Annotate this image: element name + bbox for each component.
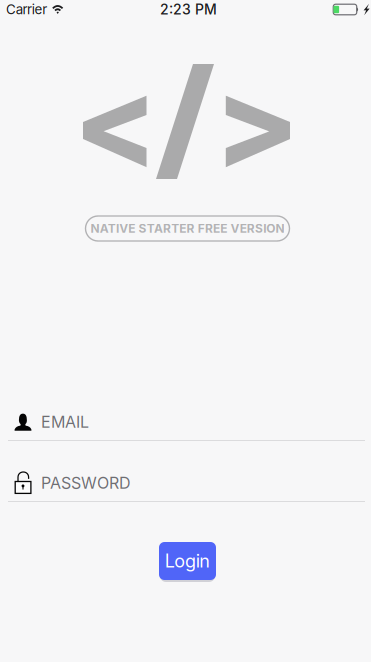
staticText: NATIVE STARTER FREE VERSION <box>90 221 284 236</box>
staticText: EMAIL <box>41 412 89 432</box>
staticText: 2:23 PM <box>160 1 217 18</box>
staticText: Carrier <box>6 1 47 17</box>
staticText: PASSWORD <box>41 473 131 493</box>
button[interactable]: Login <box>159 542 216 580</box>
staticText: Login <box>165 550 210 572</box>
